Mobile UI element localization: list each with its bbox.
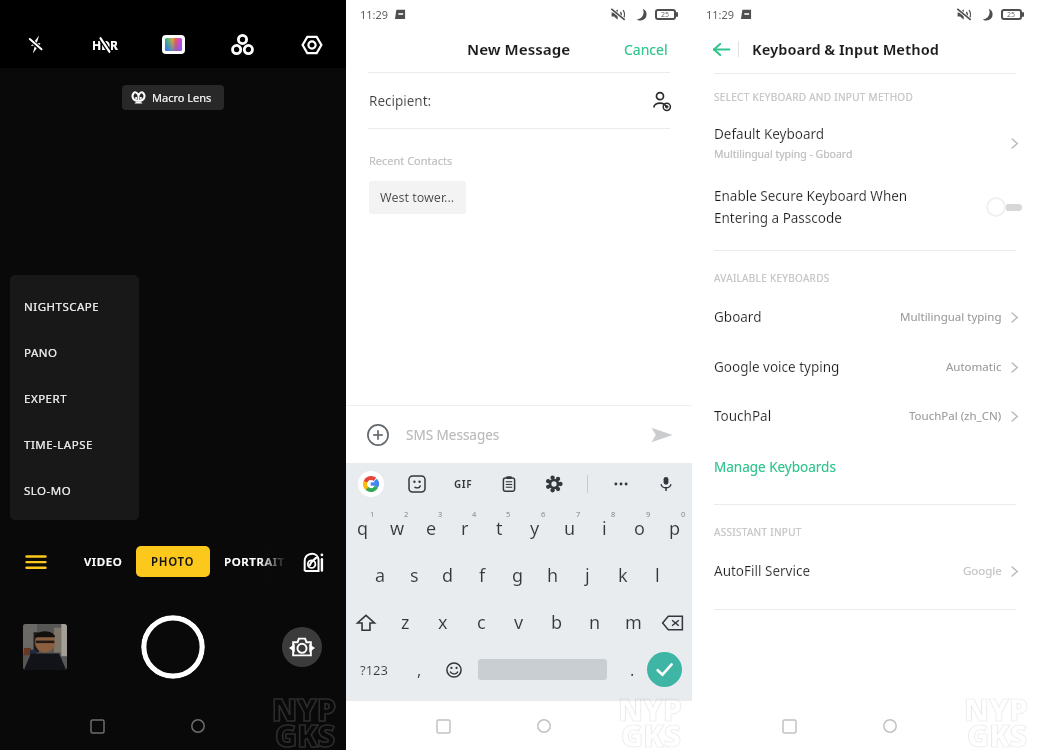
staticText: n [589,610,601,635]
button[interactable]: EXPERT [10,376,139,422]
button[interactable]: Cancel [608,31,692,68]
button[interactable]: Colour filters [139,22,208,67]
button[interactable]: Stickers [405,472,429,496]
button[interactable]: Backspace [652,599,692,646]
staticText: TouchPal (zh_CN) [909,408,1002,424]
button[interactable]: Send [648,421,676,449]
button[interactable]: Enter [647,652,682,687]
button[interactable]: NIGHTSCAPE [10,284,139,330]
button[interactable]: VIDEO [75,540,131,584]
button[interactable]: k [605,552,640,599]
button[interactable]: . [617,646,647,693]
button[interactable]: Gallery [23,624,67,670]
button[interactable]: AI camera [296,540,330,584]
button[interactable]: d [431,552,465,599]
button[interactable]: Recipient: [346,74,692,128]
button[interactable]: Google voice typing [692,345,1038,389]
button[interactable]: a [363,552,397,599]
button[interactable]: Shift [346,599,386,646]
button[interactable]: g [500,552,535,599]
button[interactable]: Clipboard [497,472,521,496]
button[interactable]: TouchPal [692,394,1038,438]
staticText: e [426,516,437,541]
button[interactable]: Macro Lens [122,85,224,110]
staticText: 8 [611,509,616,519]
button[interactable]: r [448,505,482,552]
button[interactable]: s [397,552,431,599]
button[interactable]: i [587,505,622,552]
button[interactable]: PORTRAIT [224,540,286,584]
staticText: m [625,610,642,635]
staticText: SELECT KEYBOARD AND INPUT METHOD [714,90,914,104]
button[interactable]: v [500,599,538,646]
staticText: z [401,610,410,635]
button[interactable]: Emoji [436,646,472,693]
button[interactable]: More options [609,472,633,496]
button[interactable]: b [538,599,576,646]
button[interactable]: Recents [83,712,111,740]
button[interactable]: n [576,599,614,646]
staticText: y [530,516,540,541]
staticText: p [669,516,681,541]
button[interactable]: f [465,552,500,599]
button[interactable]: Home [530,712,558,740]
button[interactable]: Voice input [654,472,678,496]
button[interactable]: TIME-LAPSE [10,422,139,468]
button[interactable]: x [424,599,462,646]
button[interactable]: t [482,505,517,552]
button[interactable]: j [570,552,605,599]
staticText: l [655,563,660,588]
button[interactable]: Gboard [692,295,1038,339]
staticText: 11:29 [706,7,735,22]
button[interactable]: Modes menu [20,540,52,584]
button[interactable]: l [640,552,675,599]
button[interactable]: Shutter [141,615,205,679]
button[interactable]: Default Keyboard [692,121,1038,165]
button[interactable]: h [535,552,570,599]
button[interactable]: Recents [429,712,457,740]
button[interactable]: SLO-MO [10,468,139,514]
staticText: West tower... [380,189,455,206]
button[interactable]: Keyboard settings [542,472,566,496]
button[interactable]: c [462,599,500,646]
button[interactable]: Recents [775,712,803,740]
button[interactable]: Scene detection [208,22,277,67]
staticText: c [477,610,486,635]
button[interactable]: Back [710,38,732,60]
staticText: f [479,563,486,588]
button[interactable]: Switch camera [282,627,322,667]
staticText: PHOTO [151,554,195,570]
button[interactable]: p [657,505,692,552]
button[interactable]: e [414,505,448,552]
button[interactable]: z [386,599,424,646]
button[interactable]: Google [358,471,384,497]
staticText: b [551,610,563,635]
button[interactable]: u [552,505,587,552]
button[interactable]: Add attachment [364,421,392,449]
button[interactable]: West tower... [369,181,466,214]
button[interactable]: Enable Secure Keyboard When Entering a P… [692,172,1038,242]
button[interactable]: Home [876,712,904,740]
staticText: a [375,563,386,588]
button[interactable]: w [380,505,414,552]
button[interactable]: Manage Keyboards [692,446,1038,488]
button[interactable]: GIF [450,472,476,496]
button[interactable]: , [402,646,436,693]
button[interactable]: q [346,505,380,552]
staticText: k [618,563,628,588]
button[interactable]: o [622,505,657,552]
button[interactable]: Home [184,712,212,740]
button[interactable]: ?123 [346,646,402,693]
button[interactable]: HDR off [70,22,139,67]
button[interactable]: PHOTO [136,546,210,577]
button[interactable]: m [614,599,652,646]
button[interactable]: y [517,505,552,552]
button[interactable]: PANO [10,330,139,376]
staticText: SMS Messages [406,426,500,444]
button[interactable]: Add contact [648,88,674,114]
button[interactable]: AutoFill Service [692,549,1038,593]
button[interactable]: Flash off [0,22,70,67]
button[interactable]: Settings [277,22,346,67]
staticText: VIDEO [84,554,123,570]
